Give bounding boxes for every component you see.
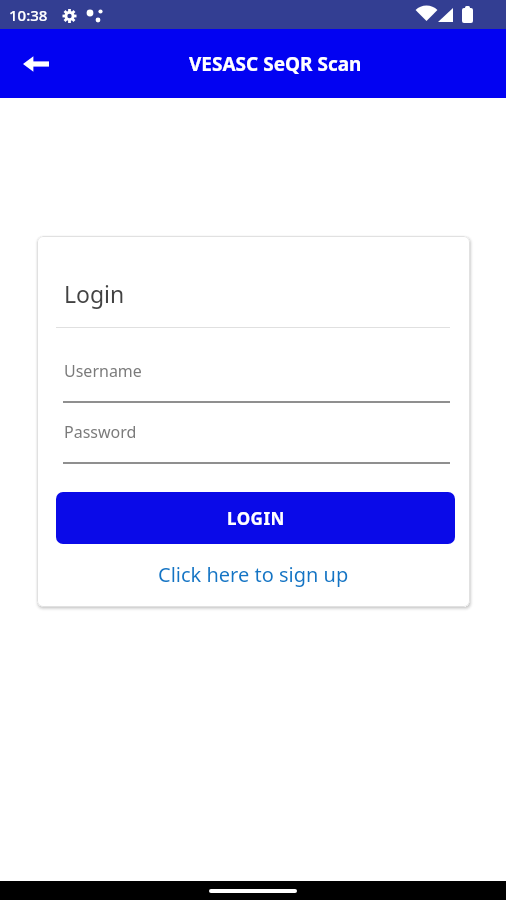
staticText: VESASC SeQR Scan <box>189 51 362 77</box>
button[interactable]: LOGIN <box>56 492 455 544</box>
staticText: Password <box>64 421 137 443</box>
staticText: Username <box>64 360 142 382</box>
button[interactable]: Click here to sign up <box>158 561 349 588</box>
staticText: 10:38 <box>9 5 48 25</box>
button[interactable]: Password <box>56 415 450 465</box>
button[interactable] <box>14 42 58 86</box>
button[interactable]: Username <box>56 354 450 404</box>
staticText: Click here to sign up <box>158 561 349 588</box>
staticText: Login <box>64 278 125 309</box>
staticText: LOGIN <box>227 507 285 530</box>
